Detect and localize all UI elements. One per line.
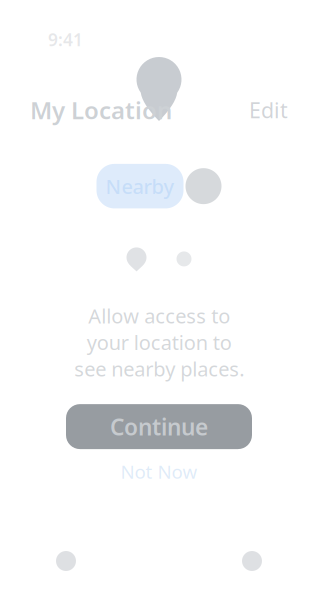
button[interactable]: Continue xyxy=(66,404,252,449)
staticText: Allow access to your location to see nea… xyxy=(74,302,244,382)
staticText: Nearby xyxy=(105,173,174,199)
staticText: My Location xyxy=(30,94,172,126)
button[interactable]: Previous xyxy=(23,539,109,583)
staticText: 9:41 xyxy=(48,28,83,51)
staticText: Edit xyxy=(249,96,288,124)
button[interactable]: Not Now xyxy=(120,455,197,488)
button[interactable]: Next xyxy=(209,539,295,583)
staticText: Continue xyxy=(110,412,208,442)
staticText: Not Now xyxy=(120,459,197,484)
